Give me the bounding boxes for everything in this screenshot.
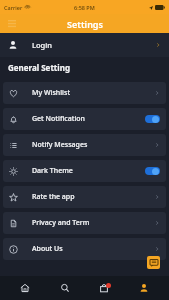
button[interactable]: Cart — [89, 276, 119, 300]
button[interactable]: About Us — [3, 238, 166, 260]
staticText: My Wishlist — [32, 88, 71, 98]
staticText: Privacy and Term — [32, 218, 90, 228]
button[interactable]: Dark Theme — [145, 167, 160, 175]
staticText: Dark Theme — [32, 166, 73, 176]
button[interactable]: Search — [50, 276, 80, 300]
staticText: Settings — [67, 18, 103, 30]
button[interactable]: Dark Theme — [3, 160, 166, 182]
staticText: Carrier — [4, 4, 23, 11]
staticText: Notify Messages — [32, 140, 88, 150]
button[interactable]: Privacy and Term — [3, 212, 166, 234]
button[interactable]: Get Notification — [3, 108, 166, 130]
staticText: 6:58 PM — [74, 4, 95, 11]
staticText: Get Notification — [32, 114, 85, 124]
button[interactable]: Profile — [129, 276, 159, 300]
staticText: Login — [32, 40, 52, 50]
button[interactable]: Get Notification — [145, 115, 160, 123]
staticText: About Us — [32, 244, 63, 254]
button[interactable]: Notify Messages — [3, 134, 166, 156]
button[interactable]: Chat — [147, 256, 160, 269]
button[interactable]: Login — [0, 33, 169, 57]
button[interactable]: My Wishlist — [3, 82, 166, 104]
staticText: General Setting — [8, 62, 70, 73]
button[interactable]: Home — [10, 276, 40, 300]
button[interactable]: Rate the app — [3, 186, 166, 208]
staticText: Rate the app — [32, 192, 75, 202]
button[interactable]: Menu — [5, 17, 18, 30]
